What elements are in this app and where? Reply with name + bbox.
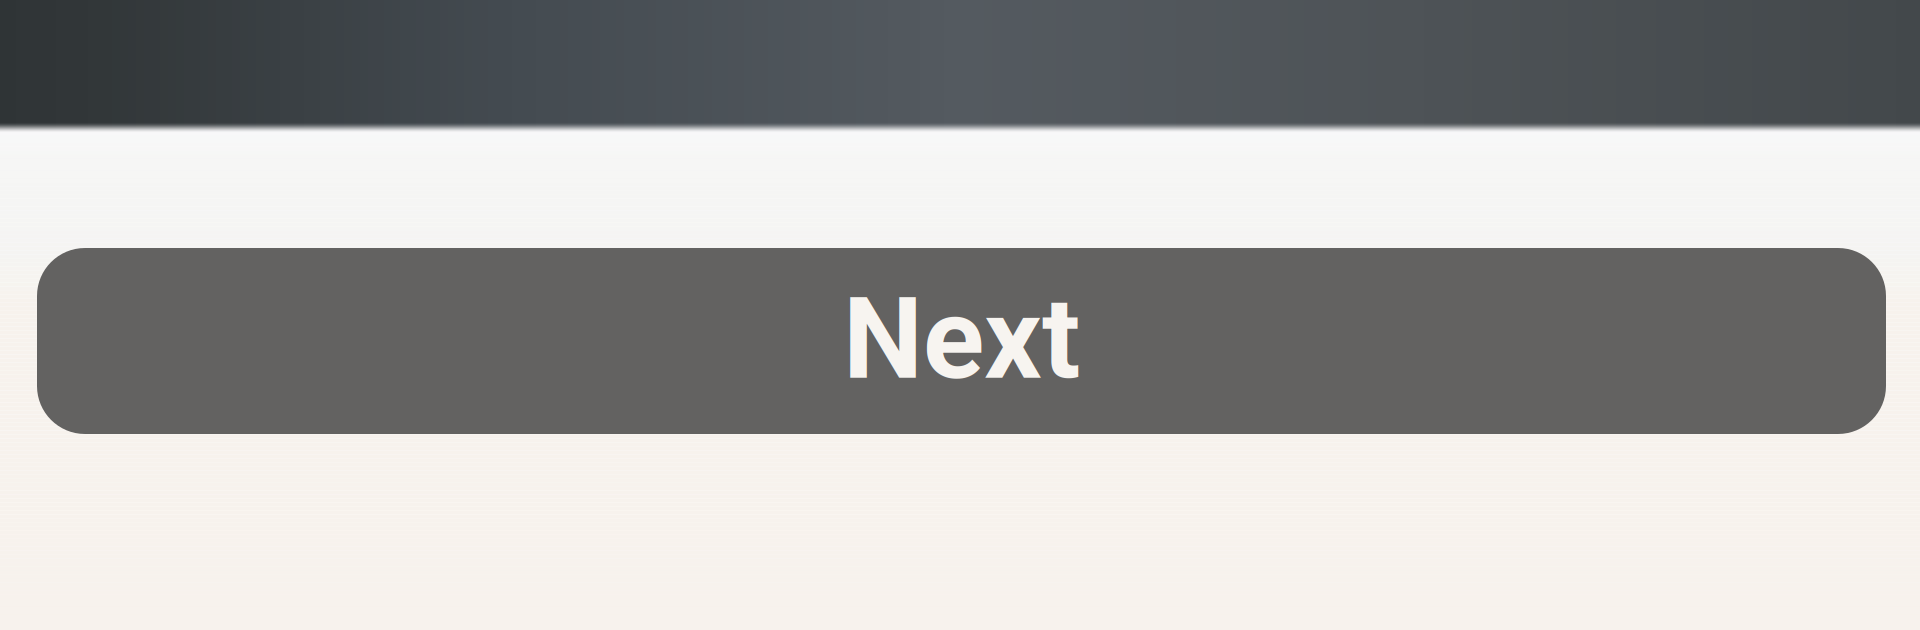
staticText: Next xyxy=(843,273,1080,405)
button[interactable]: Next xyxy=(37,248,1886,434)
